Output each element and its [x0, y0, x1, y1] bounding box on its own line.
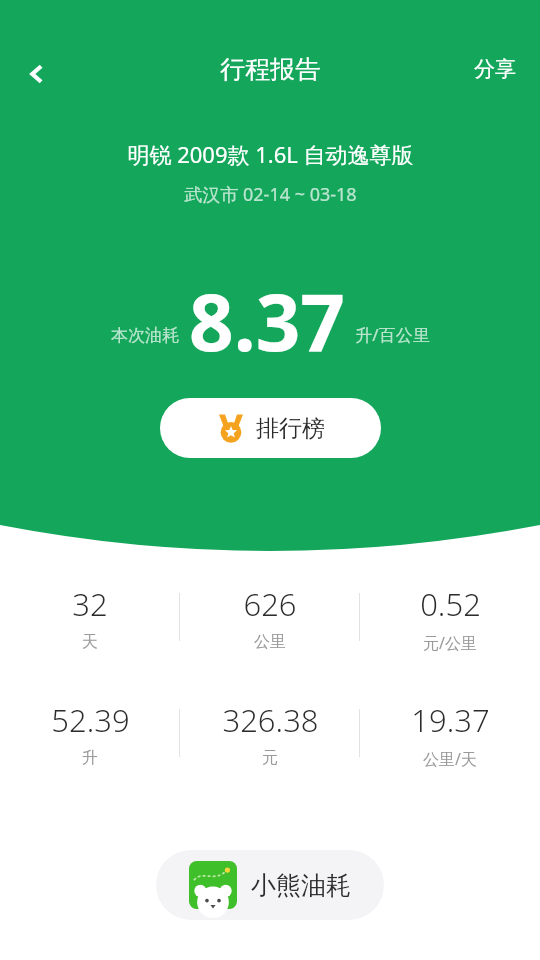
staticText: 明锐 2009款 1.6L 自动逸尊版	[127, 139, 414, 169]
staticText: 天	[82, 632, 98, 652]
staticText: 武汉市 02-14 ~ 03-18	[184, 182, 357, 207]
staticText: 52.39	[51, 699, 130, 741]
staticText: 32	[72, 583, 108, 625]
staticText: 排行榜	[256, 414, 325, 443]
staticText: 小熊油耗	[251, 870, 351, 901]
button[interactable]: Back	[12, 48, 64, 100]
staticText: 升	[82, 748, 98, 768]
staticText: 公里	[254, 632, 286, 652]
staticText: 19.37	[411, 699, 490, 741]
staticText: 元/公里	[423, 632, 477, 654]
staticText: 元	[262, 748, 278, 768]
staticText: 行程报告	[220, 54, 320, 85]
button[interactable]: 分享	[468, 52, 522, 86]
staticText: 8.37	[189, 268, 345, 360]
staticText: 0.52	[420, 583, 481, 625]
staticText: 公里/天	[423, 748, 477, 770]
button[interactable]: 小熊油耗	[156, 850, 384, 920]
staticText: 升/百公里	[355, 323, 430, 346]
staticText: 626	[243, 583, 297, 625]
button[interactable]: 排行榜	[160, 398, 381, 458]
staticText: 本次油耗	[111, 325, 179, 346]
staticText: 分享	[474, 56, 516, 82]
staticText: 326.38	[222, 699, 319, 741]
